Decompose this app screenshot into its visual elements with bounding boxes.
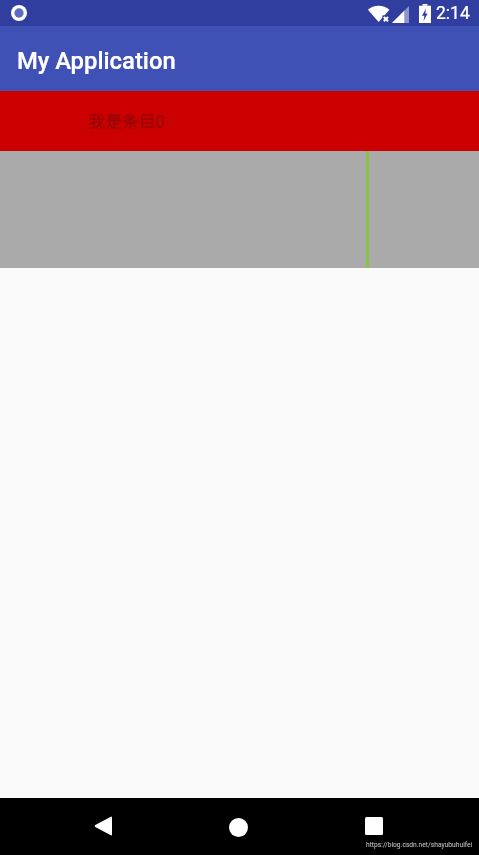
button[interactable]: Back — [83, 806, 123, 846]
button[interactable]: 我是条目0 — [0, 91, 479, 151]
staticText: 我是条目0 — [88, 109, 164, 133]
staticText: My Application — [17, 47, 176, 75]
staticText: https://blog.csdn.net/shayubuhuifei — [366, 841, 473, 849]
staticText: 我是条目0 — [88, 108, 164, 132]
button[interactable]: Recent apps — [354, 806, 394, 846]
button[interactable]: My Application — [0, 26, 479, 91]
staticText: 2:14 — [436, 3, 470, 24]
staticText: 我是条目0 — [89, 109, 165, 133]
button[interactable]: Home — [218, 807, 258, 847]
staticText: 我是条目0 — [89, 108, 165, 132]
